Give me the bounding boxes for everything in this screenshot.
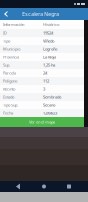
button[interactable]: Estado bbox=[0, 93, 84, 101]
staticText: Municipio bbox=[3, 46, 20, 52]
staticText: Recinto bbox=[3, 86, 15, 92]
staticText: 19524 bbox=[43, 30, 53, 36]
staticText: La Rioja bbox=[43, 54, 56, 60]
button[interactable]: Ver en el mapa bbox=[0, 117, 84, 127]
staticText: Secano bbox=[43, 102, 55, 108]
staticText: Ver en el mapa bbox=[29, 119, 55, 125]
staticText: Tipo bbox=[3, 38, 10, 44]
staticText: Tipo Sup. bbox=[3, 102, 18, 108]
staticText: Viñedo bbox=[43, 38, 54, 44]
staticText: 24 bbox=[43, 70, 47, 76]
button[interactable]: Polígono bbox=[0, 77, 84, 85]
staticText: 3 bbox=[43, 86, 45, 92]
staticText: Información bbox=[3, 22, 24, 27]
staticText: 12/04/23 bbox=[43, 110, 57, 116]
button[interactable]: Histórico bbox=[43, 20, 81, 29]
staticText: 112 bbox=[43, 78, 49, 84]
button[interactable]: Fecha bbox=[0, 109, 84, 117]
staticText: Sembrado bbox=[43, 94, 61, 100]
staticText: Sup. bbox=[3, 62, 10, 68]
button[interactable]: Recinto bbox=[0, 85, 84, 93]
staticText: Escalera Negra bbox=[22, 10, 59, 18]
button[interactable]: Parcela bbox=[0, 69, 84, 77]
button[interactable]: Recents bbox=[63, 181, 75, 191]
button[interactable]: ID bbox=[0, 29, 84, 37]
button[interactable]: Sup. bbox=[0, 61, 84, 69]
button[interactable]: Back bbox=[13, 181, 25, 191]
staticText: ID bbox=[3, 30, 7, 36]
button[interactable]: Municipio bbox=[0, 45, 84, 53]
button[interactable]: Home bbox=[38, 181, 50, 191]
button[interactable]: Información bbox=[0, 20, 43, 29]
staticText: Estado bbox=[3, 94, 14, 100]
button[interactable]: Back bbox=[0, 8, 12, 20]
button[interactable]: Tipo bbox=[0, 37, 84, 45]
staticText: Logroño bbox=[43, 46, 57, 52]
staticText: Provincia bbox=[3, 54, 19, 60]
staticText: Fecha bbox=[3, 110, 13, 116]
staticText: Polígono bbox=[3, 78, 17, 84]
staticText: Histórico bbox=[43, 22, 59, 27]
button[interactable]: Tipo Sup. bbox=[0, 101, 84, 109]
staticText: Parcela bbox=[3, 70, 16, 76]
staticText: 1,25 ha bbox=[43, 62, 55, 68]
button[interactable]: Provincia bbox=[0, 53, 84, 61]
